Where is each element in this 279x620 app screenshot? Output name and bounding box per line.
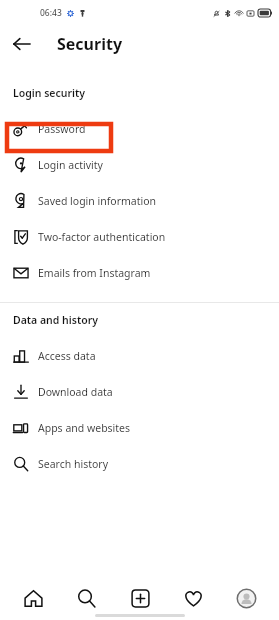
button[interactable]: Login activity <box>0 147 279 183</box>
button[interactable]: Saved login information <box>0 183 279 219</box>
button[interactable]: Search history <box>0 446 279 482</box>
staticText: Login security <box>13 86 86 100</box>
button[interactable]: Access data <box>0 338 279 374</box>
staticText: Emails from Instagram <box>38 266 151 280</box>
button[interactable]: Download data <box>0 374 279 410</box>
button[interactable]: Profile <box>226 578 266 618</box>
staticText: Login activity <box>38 158 103 172</box>
staticText: Apps and websites <box>38 421 131 435</box>
button[interactable]: Apps and websites <box>0 410 279 446</box>
staticText: Access data <box>38 349 96 363</box>
staticText: Search history <box>38 457 109 471</box>
staticText: Two-factor authentication <box>38 230 166 244</box>
button[interactable]: Search <box>66 578 106 618</box>
staticText: Download data <box>38 385 113 399</box>
button[interactable]: Activity <box>173 578 213 618</box>
button[interactable]: Home <box>13 578 53 618</box>
button[interactable]: Create <box>120 578 160 618</box>
staticText: Data and history <box>13 313 99 327</box>
button[interactable]: Password <box>0 111 279 147</box>
button[interactable]: Back <box>8 30 36 58</box>
staticText: Saved login information <box>38 194 157 208</box>
button[interactable]: Two-factor authentication <box>0 219 279 255</box>
staticText: 06:43 <box>40 7 62 19</box>
staticText: Security <box>57 33 123 55</box>
button[interactable]: Emails from Instagram <box>0 255 279 291</box>
staticText: Password <box>38 122 86 136</box>
